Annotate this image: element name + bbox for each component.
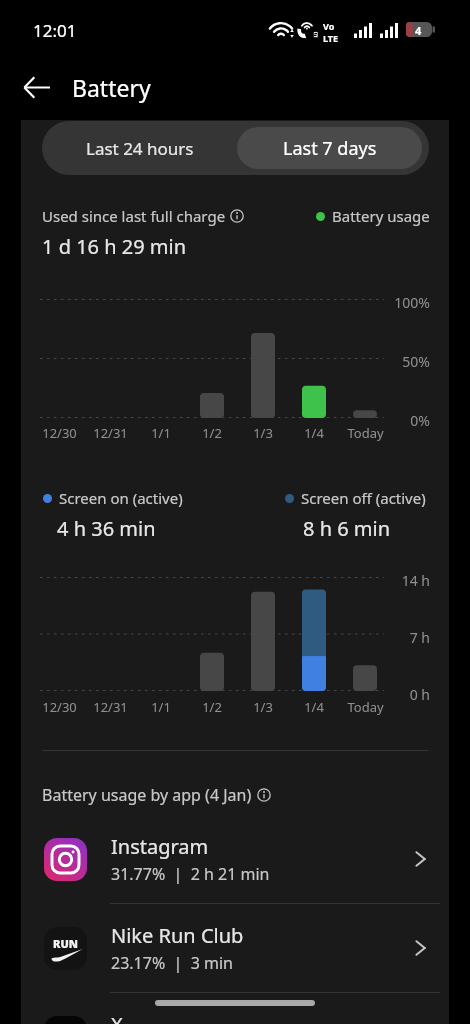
staticText: 14 h <box>370 571 430 590</box>
staticText: RUN <box>53 936 78 951</box>
staticText: 0 h <box>370 685 430 704</box>
staticText: 50% <box>370 352 430 371</box>
staticText: 8 h 6 min <box>303 515 391 542</box>
staticText: Vo <box>323 20 335 32</box>
staticText: 1/2 <box>202 424 222 442</box>
staticText: Battery usage <box>332 206 430 226</box>
button[interactable]: Instagram <box>21 815 449 903</box>
staticText: Battery <box>72 72 151 103</box>
other: Details <box>410 849 430 869</box>
staticText: 7 h <box>370 628 430 647</box>
staticText: 1/4 <box>304 698 324 716</box>
button[interactable]: Last 7 days <box>237 127 422 169</box>
staticText: 23.17% | 3 min <box>111 952 233 974</box>
staticText: 1 d 16 h 29 min <box>42 233 187 260</box>
staticText: 12/31 <box>93 698 128 716</box>
staticText: 1/1 <box>151 698 171 716</box>
staticText: 1/2 <box>202 698 222 716</box>
staticText: 4 <box>415 23 422 38</box>
staticText: Nike Run Club <box>111 922 244 949</box>
other: Details <box>410 938 430 958</box>
staticText: 12:01 <box>33 19 77 42</box>
staticText: Today <box>347 698 384 716</box>
staticText: 1/4 <box>304 424 324 442</box>
button[interactable]: X <box>21 993 449 1024</box>
button[interactable]: Last 24 hours <box>42 121 237 175</box>
staticText: Instagram <box>111 833 209 860</box>
staticText: 4 h 36 min <box>57 515 156 542</box>
staticText: Today <box>347 424 384 442</box>
staticText: LTE <box>323 32 339 44</box>
staticText: Last 7 days <box>283 136 377 161</box>
staticText: 1/1 <box>151 424 171 442</box>
staticText: Last 24 hours <box>86 137 194 160</box>
staticText: Screen off (active) <box>301 488 426 508</box>
staticText: Screen on (active) <box>59 488 183 508</box>
staticText: Battery usage by app (4 Jan) <box>42 784 252 806</box>
staticText: 100% <box>370 293 430 312</box>
staticText: X <box>111 1011 123 1024</box>
button[interactable]: Back <box>12 63 61 112</box>
staticText: 12/30 <box>42 424 77 442</box>
staticText: 12/31 <box>93 424 128 442</box>
button[interactable]: RUN <box>21 904 449 992</box>
staticText: 1/3 <box>253 698 273 716</box>
staticText: Used since last full charge <box>42 206 226 226</box>
staticText: 12/30 <box>42 698 77 716</box>
staticText: 1/3 <box>253 424 273 442</box>
staticText: 0% <box>370 411 430 430</box>
staticText: 31.77% | 2 h 21 min <box>111 863 270 885</box>
